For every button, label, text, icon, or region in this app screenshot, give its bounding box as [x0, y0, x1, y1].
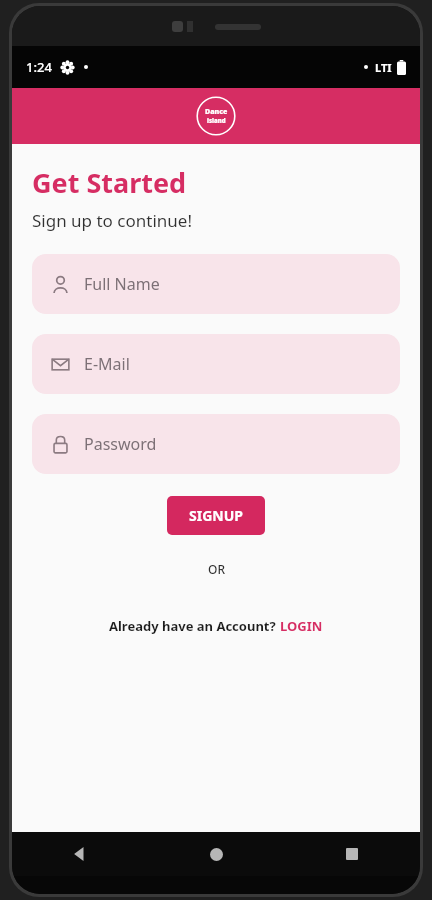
button[interactable]: SIGNUP: [167, 496, 265, 535]
staticText: Already have an Account?: [109, 617, 280, 635]
staticText: OR: [208, 561, 225, 577]
staticText: E-Mail: [84, 353, 130, 375]
staticText: Get Started: [32, 164, 187, 201]
staticText: Dance: [205, 107, 228, 117]
button[interactable]: Back: [63, 837, 97, 871]
button[interactable]: Recent apps: [335, 837, 369, 871]
staticText: SIGNUP: [189, 506, 243, 525]
staticText: LTI: [375, 60, 392, 75]
staticText: LOGIN: [280, 617, 323, 635]
staticText: Password: [84, 433, 157, 455]
button[interactable]: Home: [199, 837, 233, 871]
button[interactable]: Password: [32, 414, 400, 474]
staticText: 1:24: [26, 58, 52, 76]
button[interactable]: LOGIN: [280, 617, 323, 635]
staticText: Full Name: [84, 273, 160, 295]
staticText: Sign up to continue!: [32, 209, 192, 232]
staticText: island: [207, 117, 226, 125]
button[interactable]: E-Mail: [32, 334, 400, 394]
button[interactable]: Full Name: [32, 254, 400, 314]
